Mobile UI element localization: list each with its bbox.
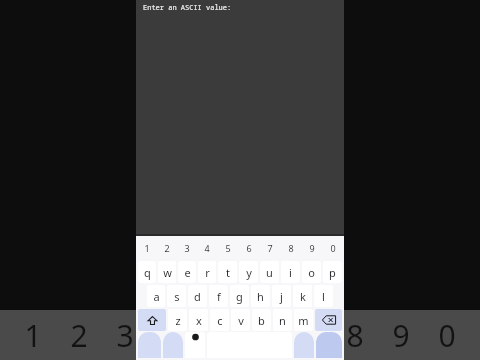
button[interactable]: r bbox=[198, 261, 216, 283]
staticText: m bbox=[298, 313, 309, 328]
button[interactable]: g bbox=[230, 285, 249, 307]
staticText: 4 bbox=[156, 315, 186, 356]
button[interactable]: y bbox=[239, 261, 258, 283]
staticText: v bbox=[238, 313, 244, 328]
staticText: g bbox=[236, 289, 243, 304]
button[interactable]: 5 bbox=[218, 237, 237, 259]
button[interactable]: 9 bbox=[302, 237, 321, 259]
staticText: 6 bbox=[246, 242, 252, 254]
button[interactable]: j bbox=[272, 285, 291, 307]
button[interactable]: m bbox=[294, 309, 313, 331]
button[interactable]: Keyboard key bbox=[163, 332, 183, 358]
button[interactable]: 8 bbox=[281, 237, 300, 259]
staticText: z bbox=[175, 313, 181, 328]
button[interactable]: t bbox=[218, 261, 237, 283]
staticText: 5 bbox=[202, 315, 232, 356]
button[interactable]: v bbox=[231, 309, 250, 331]
staticText: e bbox=[184, 265, 191, 280]
button[interactable]: e bbox=[178, 261, 196, 283]
button[interactable]: a bbox=[147, 285, 165, 307]
button[interactable]: 0 bbox=[323, 237, 342, 259]
button[interactable]: q bbox=[138, 261, 156, 283]
staticText: 2 bbox=[164, 242, 170, 254]
button[interactable]: k bbox=[293, 285, 312, 307]
button[interactable]: Keyboard key bbox=[138, 332, 161, 358]
button[interactable]: b bbox=[252, 309, 271, 331]
button[interactable]: d bbox=[188, 285, 207, 307]
staticText: 0 bbox=[330, 242, 336, 254]
button[interactable]: p bbox=[323, 261, 342, 283]
button[interactable]: Shift bbox=[138, 309, 166, 331]
staticText: u bbox=[266, 265, 273, 280]
staticText: 0 bbox=[432, 315, 462, 356]
button[interactable]: i bbox=[281, 261, 300, 283]
staticText: 7 bbox=[267, 242, 273, 254]
button[interactable]: w bbox=[158, 261, 176, 283]
staticText: o bbox=[308, 265, 315, 280]
button[interactable]: Emoji bbox=[185, 332, 205, 358]
button[interactable]: z bbox=[168, 309, 187, 331]
staticText: 4 bbox=[204, 242, 210, 254]
staticText: 9 bbox=[309, 242, 315, 254]
button[interactable]: 7 bbox=[260, 237, 279, 259]
staticText: x bbox=[196, 313, 202, 328]
button[interactable]: s bbox=[167, 285, 186, 307]
staticText: q bbox=[144, 265, 151, 280]
staticText: 3 bbox=[110, 315, 140, 356]
staticText: d bbox=[194, 289, 201, 304]
staticText: f bbox=[217, 289, 221, 304]
button[interactable]: f bbox=[209, 285, 228, 307]
staticText: 8 bbox=[288, 242, 294, 254]
button[interactable]: Keyboard key bbox=[316, 332, 342, 358]
staticText: l bbox=[322, 289, 325, 304]
staticText: r bbox=[205, 265, 210, 280]
staticText: h bbox=[257, 289, 264, 304]
button[interactable]: 6 bbox=[239, 237, 258, 259]
button[interactable]: 4 bbox=[198, 237, 216, 259]
staticText: 1 bbox=[18, 315, 48, 356]
staticText: Enter an ASCII value: bbox=[143, 3, 232, 13]
staticText: j bbox=[280, 289, 283, 304]
staticText: y bbox=[246, 265, 252, 280]
staticText: w bbox=[163, 265, 172, 280]
button[interactable]: h bbox=[251, 285, 270, 307]
button[interactable]: n bbox=[273, 309, 292, 331]
staticText: i bbox=[289, 265, 292, 280]
staticText: n bbox=[279, 313, 286, 328]
staticText: 6 bbox=[248, 315, 278, 356]
staticText: t bbox=[226, 265, 230, 280]
staticText: b bbox=[258, 313, 265, 328]
staticText: a bbox=[153, 289, 160, 304]
button[interactable]: Keyboard key bbox=[294, 332, 314, 358]
staticText: 9 bbox=[386, 315, 416, 356]
button[interactable]: x bbox=[189, 309, 208, 331]
staticText: c bbox=[217, 313, 223, 328]
staticText: k bbox=[300, 289, 306, 304]
button[interactable]: Backspace bbox=[315, 309, 342, 331]
staticText: s bbox=[174, 289, 180, 304]
staticText: 2 bbox=[64, 315, 94, 356]
button[interactable]: 1 bbox=[138, 237, 156, 259]
staticText: 1 bbox=[144, 242, 150, 254]
staticText: 7 bbox=[294, 315, 324, 356]
button[interactable]: 2 bbox=[158, 237, 176, 259]
button[interactable]: l bbox=[314, 285, 333, 307]
button[interactable]: o bbox=[302, 261, 321, 283]
staticText: 8 bbox=[340, 315, 370, 356]
staticText: p bbox=[329, 265, 336, 280]
button[interactable]: u bbox=[260, 261, 279, 283]
button[interactable]: c bbox=[210, 309, 229, 331]
staticText: 3 bbox=[184, 242, 190, 254]
staticText: 5 bbox=[225, 242, 231, 254]
button[interactable]: 3 bbox=[178, 237, 196, 259]
